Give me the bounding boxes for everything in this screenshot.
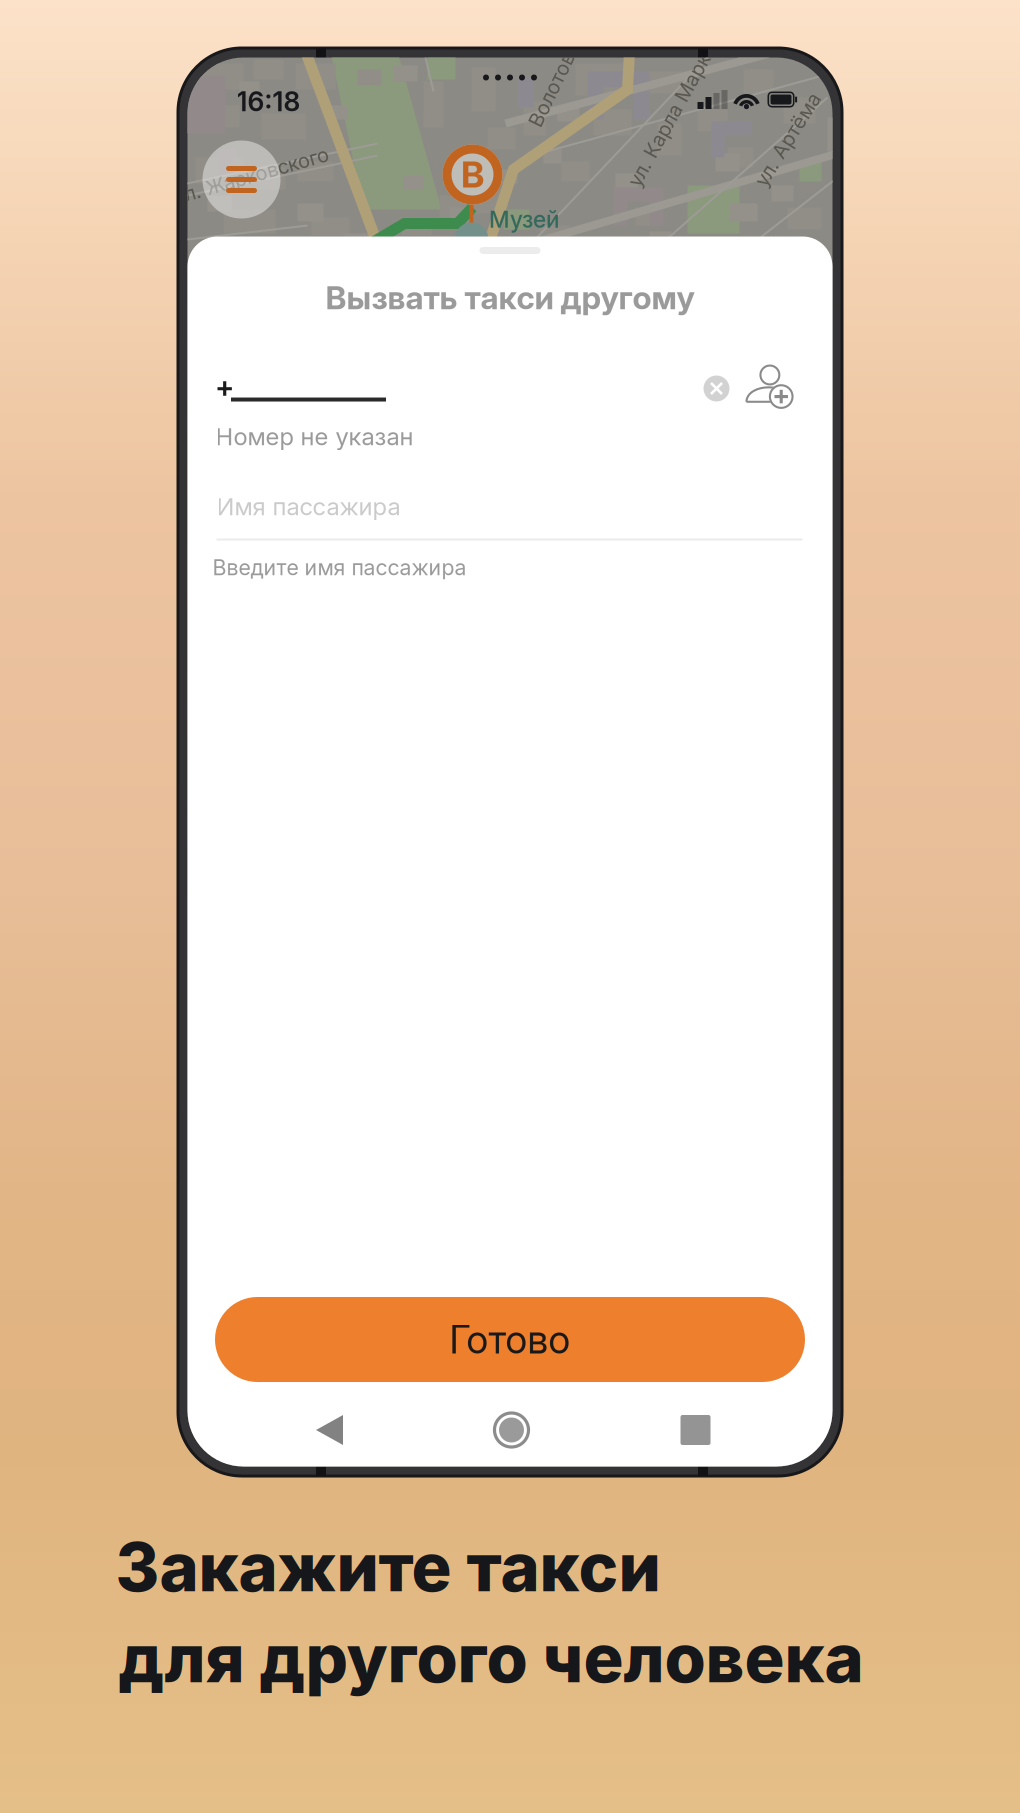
staticText: 16:18 [236, 85, 300, 118]
staticText: Готово [449, 1316, 570, 1363]
staticText: Закажите такси [115, 1527, 660, 1607]
staticText: Номер не указан [215, 422, 413, 451]
staticText: Музей [489, 206, 560, 233]
staticText: ул. Карла Маркс [592, 103, 751, 128]
staticText: + [215, 369, 234, 404]
button[interactable]: Назад [277, 1393, 381, 1467]
staticText: Имя пассажира [216, 492, 400, 521]
staticText: ул. Жарковского [171, 163, 331, 188]
staticText: Введите имя пассажира [212, 555, 466, 580]
staticText: Волотов [511, 77, 591, 102]
staticText: для другого человека [118, 1618, 863, 1698]
staticText: ул. Артёма [734, 127, 840, 152]
button[interactable]: Домой [459, 1393, 563, 1467]
staticText: В [461, 153, 484, 196]
staticText: Вызвать такси другому [325, 278, 694, 317]
button[interactable]: Недавние приложения [643, 1393, 747, 1467]
button[interactable]: Очистить номер [703, 375, 729, 401]
button[interactable]: Готово [215, 1297, 805, 1382]
button[interactable]: Меню [202, 140, 280, 218]
button[interactable]: Выбрать из контактов [744, 362, 798, 414]
